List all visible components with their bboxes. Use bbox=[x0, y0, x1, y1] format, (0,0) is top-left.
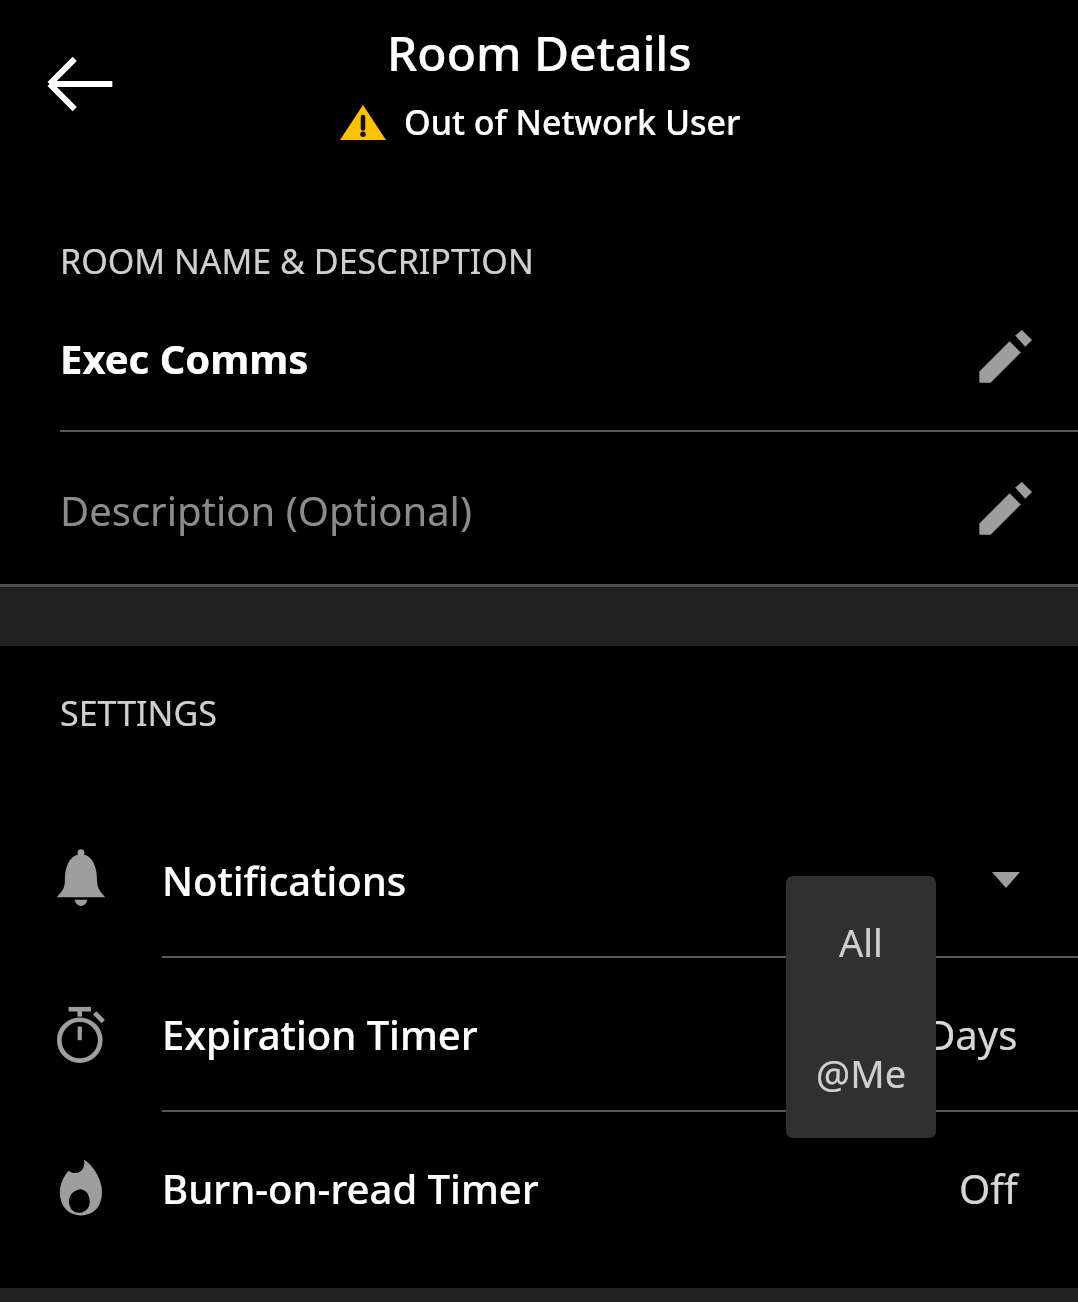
staticText: Out of Network User bbox=[404, 99, 741, 145]
button[interactable]: Notifications bbox=[0, 804, 1078, 956]
staticText: @Me bbox=[816, 1047, 907, 1099]
staticText: Off bbox=[959, 1161, 1018, 1215]
staticText: SETTINGS bbox=[60, 690, 217, 736]
button[interactable]: All bbox=[786, 876, 936, 1007]
button[interactable]: Expiration Timer bbox=[0, 958, 1078, 1110]
button[interactable]: Burn-on-read Timer bbox=[0, 1112, 1078, 1264]
staticText: Room Details bbox=[387, 20, 692, 85]
staticText: Description (Optional) bbox=[60, 483, 966, 537]
button[interactable]: @Me bbox=[786, 1007, 936, 1138]
staticText: 30 Days bbox=[870, 1007, 1018, 1061]
button[interactable]: Edit description bbox=[966, 478, 1042, 542]
staticText: ROOM NAME & DESCRIPTION bbox=[60, 238, 534, 284]
staticText: Expiration Timer bbox=[162, 1007, 870, 1061]
button[interactable]: Back bbox=[22, 26, 138, 142]
staticText: Notifications bbox=[162, 853, 992, 907]
staticText: All bbox=[839, 916, 883, 968]
staticText: Burn-on-read Timer bbox=[162, 1161, 959, 1215]
button[interactable]: Edit room name bbox=[966, 326, 1042, 390]
staticText: Exec Comms bbox=[60, 331, 966, 385]
